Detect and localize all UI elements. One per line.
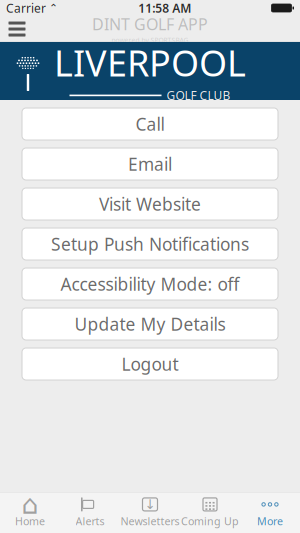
staticText: Newsletters [120, 514, 179, 528]
staticText: ↓ [144, 497, 155, 512]
staticText: Logout [121, 352, 178, 375]
button[interactable]: ⌂ [0, 492, 60, 533]
staticText: Accessibility Mode: off [60, 272, 239, 295]
staticText: ⌂ [21, 489, 38, 520]
staticText: LIVERPOOL [54, 39, 246, 86]
staticText: More [257, 514, 283, 528]
button[interactable]: Accessibility Mode: off [22, 268, 278, 300]
staticText: Alerts [75, 514, 104, 528]
staticText: Visit Website [99, 192, 201, 215]
staticText: DINT GOLF APP [92, 13, 208, 35]
staticText: Update My Details [74, 312, 225, 335]
staticText: Setup Push Notifications [51, 232, 249, 255]
button[interactable]: Update My Details [22, 308, 278, 340]
staticText: Home [15, 514, 45, 528]
button[interactable]: Call [22, 108, 278, 140]
button[interactable]: Alerts [60, 492, 120, 533]
staticText: GOLF CLUB [166, 87, 230, 103]
staticText: powered by SPORTSBAG [111, 36, 188, 45]
button[interactable]: Menu [0, 16, 34, 42]
button[interactable]: Visit Website [22, 188, 278, 220]
button[interactable]: Email [22, 148, 278, 180]
button[interactable]: ↓ [120, 492, 180, 533]
staticText: ⌃ [46, 2, 58, 14]
button[interactable]: Logout [22, 348, 278, 380]
staticText: Call [135, 112, 164, 135]
button[interactable]: Coming Up [180, 492, 240, 533]
staticText: Coming Up [181, 514, 239, 528]
staticText: Carrier [6, 0, 46, 16]
staticText: Email [128, 152, 172, 175]
button[interactable]: Setup Push Notifications [22, 228, 278, 260]
button[interactable]: More [240, 492, 300, 533]
staticText: 11:58 AM [138, 0, 191, 16]
